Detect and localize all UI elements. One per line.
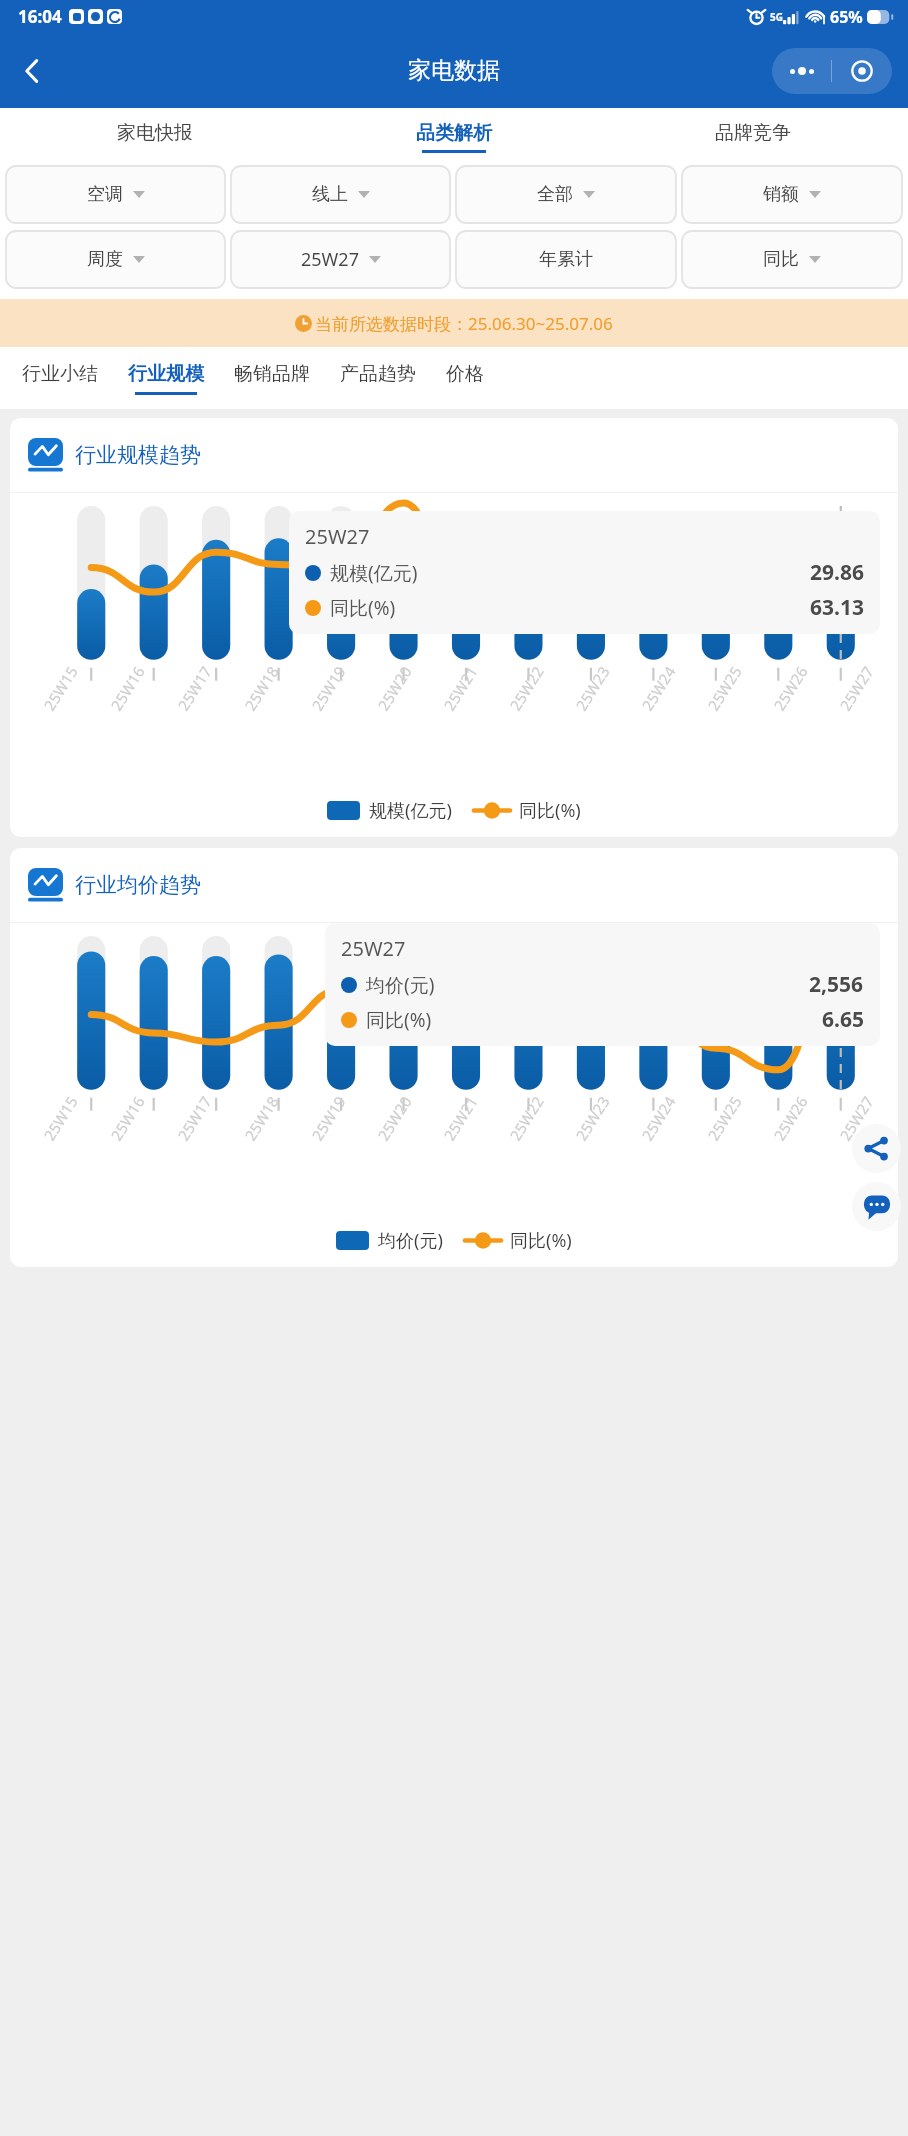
button[interactable]: 行业小结 bbox=[22, 362, 98, 395]
button[interactable]: 行业规模 bbox=[128, 362, 204, 395]
staticText: 25W15 bbox=[39, 662, 82, 714]
staticText: 当前所选数据时段：25.06.30~25.07.06 bbox=[315, 312, 613, 335]
staticText: 25W15 bbox=[39, 1092, 82, 1144]
staticText: 同比(%) bbox=[519, 798, 581, 823]
staticText: 25W20 bbox=[373, 1092, 416, 1144]
button[interactable]: 产品趋势 bbox=[340, 362, 416, 395]
staticText: 25W18 bbox=[240, 662, 283, 714]
staticText: 同比(%) bbox=[330, 595, 396, 621]
staticText: 25W25 bbox=[703, 1092, 746, 1144]
staticText: 25W16 bbox=[106, 662, 149, 714]
staticText: 25W27 bbox=[341, 935, 406, 962]
staticText: 16:04 bbox=[18, 5, 62, 28]
staticText: 25W20 bbox=[373, 662, 416, 714]
staticText: 同比 bbox=[763, 248, 799, 271]
button[interactable]: Share bbox=[852, 1124, 901, 1173]
staticText: 年累计 bbox=[539, 248, 593, 271]
button[interactable]: Close bbox=[832, 48, 892, 94]
button[interactable]: 空调 bbox=[6, 166, 225, 223]
staticText: 价格 bbox=[446, 362, 484, 386]
staticText: 25W24 bbox=[637, 662, 680, 714]
staticText: 全部 bbox=[537, 183, 573, 206]
staticText: 周度 bbox=[87, 248, 123, 271]
staticText: 25W27 bbox=[301, 247, 359, 272]
button[interactable]: 年累计 bbox=[456, 231, 676, 288]
button[interactable]: 同比 bbox=[682, 231, 902, 288]
button[interactable]: 行业均价趋势 bbox=[10, 848, 898, 1267]
staticText: 25W21 bbox=[439, 662, 482, 714]
staticText: 6.65 bbox=[822, 1005, 864, 1034]
button[interactable]: 销额 bbox=[682, 166, 902, 223]
button[interactable]: 周度 bbox=[6, 231, 225, 288]
button[interactable]: 线上 bbox=[231, 166, 450, 223]
staticText: 同比(%) bbox=[510, 1228, 572, 1253]
button[interactable]: 行业规模趋势 bbox=[10, 418, 898, 837]
staticText: 65% bbox=[830, 6, 863, 28]
staticText: 25W23 bbox=[571, 662, 614, 714]
button[interactable]: 品类解析 bbox=[304, 108, 603, 166]
staticText: 25W23 bbox=[571, 1092, 614, 1144]
staticText: 25W17 bbox=[173, 1092, 216, 1144]
staticText: 线上 bbox=[312, 183, 348, 206]
staticText: 25W19 bbox=[307, 1092, 350, 1144]
staticText: 销额 bbox=[763, 183, 799, 206]
staticText: 规模(亿元) bbox=[330, 560, 418, 586]
button[interactable]: More options bbox=[772, 48, 831, 94]
button[interactable]: Feedback bbox=[852, 1182, 901, 1231]
button[interactable]: 畅销品牌 bbox=[234, 362, 310, 395]
button[interactable]: 价格 bbox=[446, 362, 484, 395]
staticText: 25W17 bbox=[173, 662, 216, 714]
staticText: 25W19 bbox=[307, 662, 350, 714]
staticText: 品牌竞争 bbox=[715, 121, 791, 145]
staticText: 行业均价趋势 bbox=[75, 872, 201, 898]
button[interactable]: 品牌竞争 bbox=[603, 108, 902, 166]
staticText: 25W16 bbox=[106, 1092, 149, 1144]
staticText: 家电数据 bbox=[408, 56, 500, 85]
staticText: 家电快报 bbox=[117, 121, 193, 145]
button[interactable]: Back bbox=[8, 47, 56, 95]
staticText: 同比(%) bbox=[366, 1007, 432, 1033]
staticText: 25W26 bbox=[769, 1092, 812, 1144]
staticText: 畅销品牌 bbox=[234, 362, 310, 386]
button[interactable]: 25W27 bbox=[231, 231, 450, 288]
staticText: 25W27 bbox=[835, 662, 878, 714]
staticText: 行业规模 bbox=[128, 362, 204, 386]
staticText: 行业小结 bbox=[22, 362, 98, 386]
staticText: 25W18 bbox=[240, 1092, 283, 1144]
staticText: 5G bbox=[770, 10, 783, 24]
button[interactable]: 全部 bbox=[456, 166, 676, 223]
staticText: 规模(亿元) bbox=[369, 798, 452, 823]
staticText: 63.13 bbox=[810, 593, 864, 622]
staticText: 25W25 bbox=[703, 662, 746, 714]
staticText: 25W27 bbox=[835, 1092, 878, 1144]
staticText: 25W27 bbox=[305, 523, 370, 550]
staticText: 25W26 bbox=[769, 662, 812, 714]
staticText: 2,556 bbox=[809, 970, 864, 999]
staticText: 25W24 bbox=[637, 1092, 680, 1144]
staticText: 25W22 bbox=[505, 662, 548, 714]
staticText: 均价(元) bbox=[366, 972, 435, 998]
staticText: 行业规模趋势 bbox=[75, 442, 201, 468]
staticText: 产品趋势 bbox=[340, 362, 416, 386]
staticText: 均价(元) bbox=[378, 1228, 443, 1253]
staticText: 品类解析 bbox=[416, 121, 492, 145]
staticText: 25W21 bbox=[439, 1092, 482, 1144]
button[interactable]: 家电快报 bbox=[6, 108, 304, 166]
staticText: 25W22 bbox=[505, 1092, 548, 1144]
staticText: 29.86 bbox=[810, 558, 864, 587]
staticText: 空调 bbox=[87, 183, 123, 206]
